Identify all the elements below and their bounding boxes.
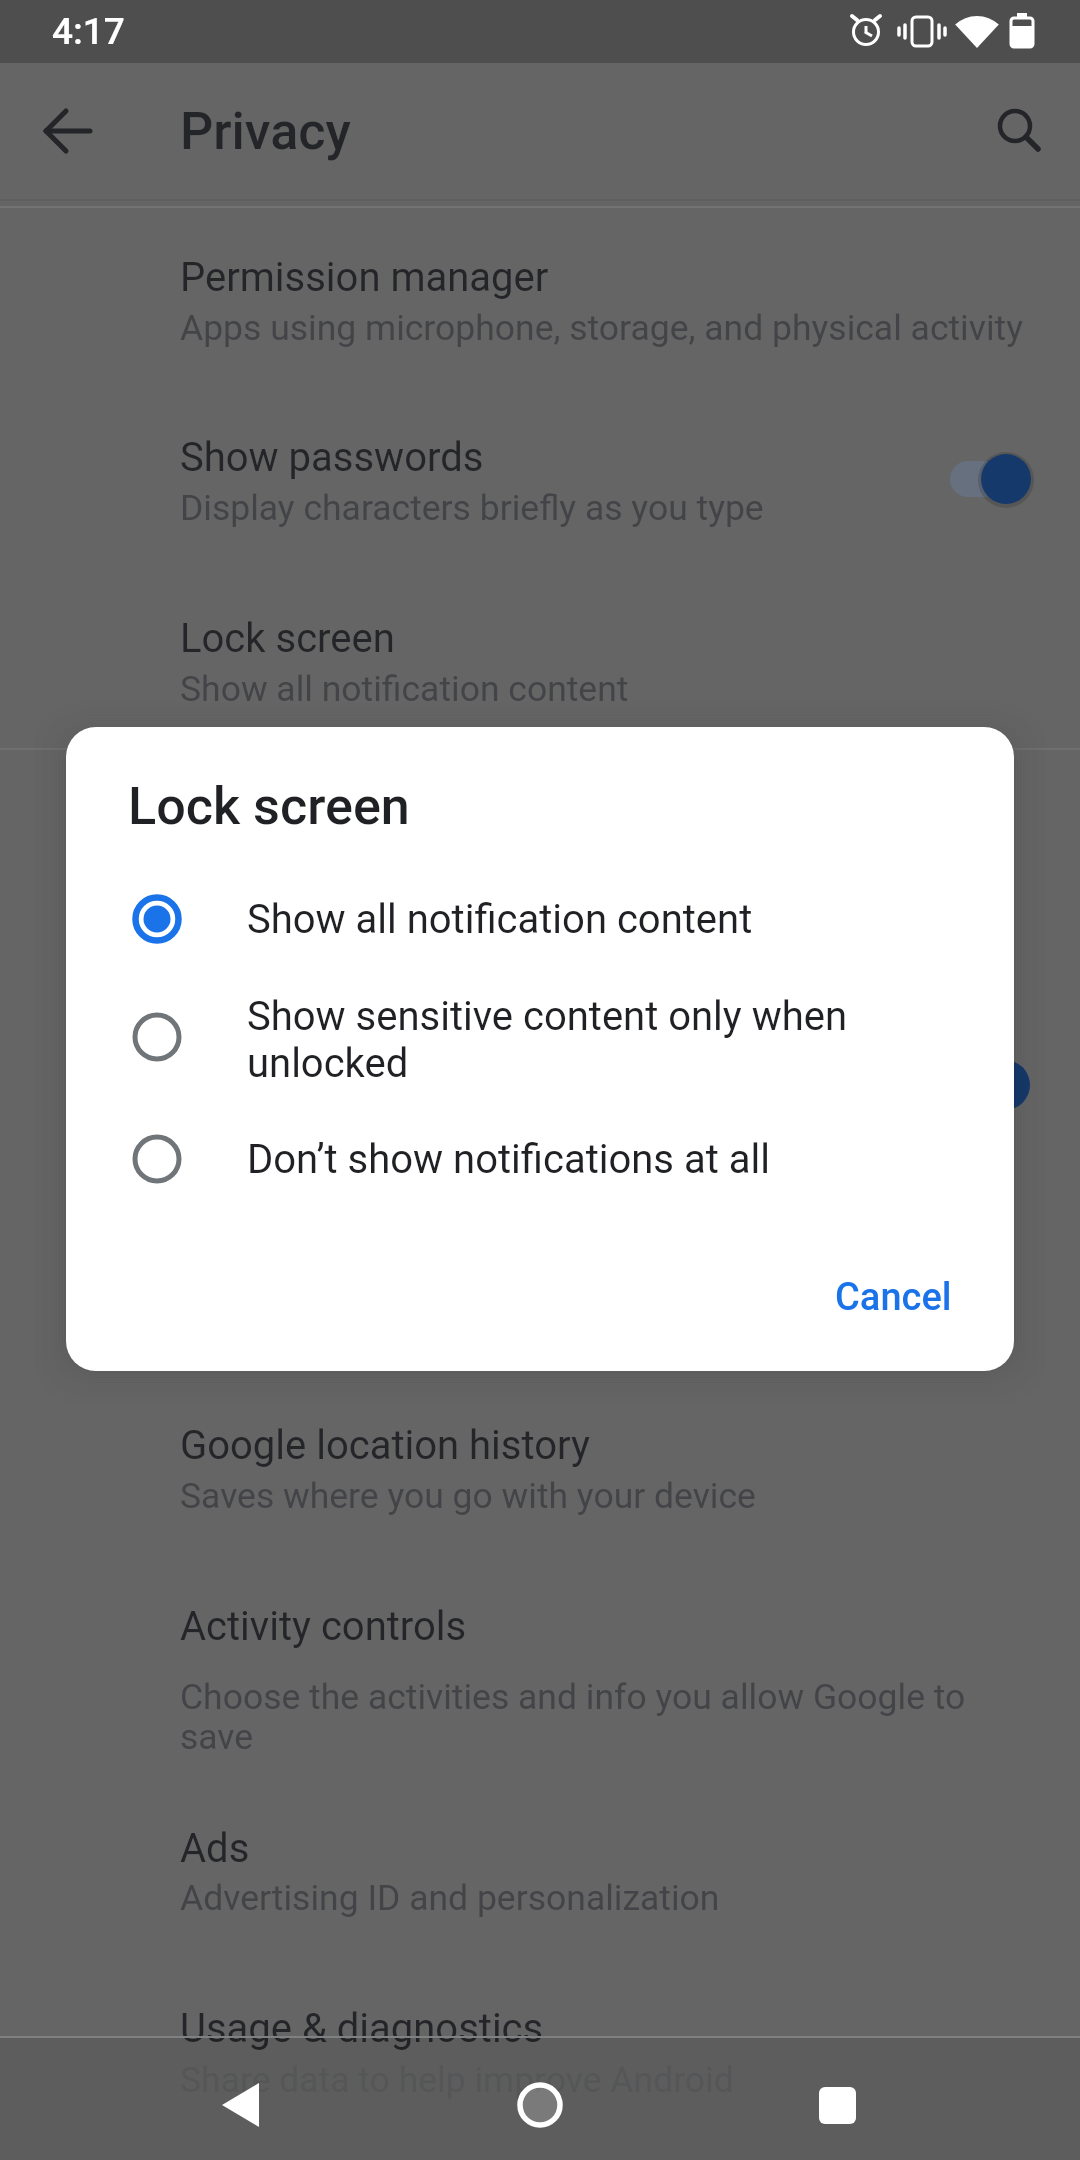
staticText: Choose the activities and info you allow…: [180, 1676, 1000, 1758]
staticText: Show all notification content: [247, 896, 753, 943]
button[interactable]: [0, 1973, 1080, 2083]
staticText: Google location history: [180, 1422, 590, 1469]
button[interactable]: [0, 1793, 1080, 1903]
button[interactable]: [0, 402, 1080, 512]
button[interactable]: [86, 1104, 994, 1214]
button[interactable]: [994, 106, 1042, 154]
staticText: Activity controls: [180, 1603, 467, 1650]
staticText: Apps using microphone, storage, and phys…: [180, 307, 1023, 349]
staticText: Usage & diagnostics: [180, 2005, 544, 2052]
button[interactable]: [44, 107, 92, 155]
button[interactable]: [222, 2083, 262, 2127]
staticText: Share data to help improve Android: [180, 2059, 734, 2101]
button[interactable]: [516, 2081, 564, 2129]
staticText: Privacy: [180, 101, 351, 162]
staticText: Cancel: [835, 1275, 952, 1320]
button[interactable]: [0, 222, 1080, 332]
staticText: Advertising ID and personalization: [180, 1877, 720, 1919]
staticText: Show passwords: [180, 434, 484, 481]
button[interactable]: [981, 454, 1031, 504]
button[interactable]: [0, 1571, 1080, 1681]
staticText: Saves where you go with your device: [180, 1475, 756, 1517]
staticText: Ads: [180, 1825, 250, 1872]
staticText: Permission manager: [180, 254, 549, 301]
staticText: 4:17: [52, 10, 125, 53]
button[interactable]: [816, 2081, 864, 2129]
staticText: Don’t show notifications at all: [247, 1136, 770, 1183]
button[interactable]: [0, 1390, 1080, 1500]
staticText: Lock screen: [128, 776, 410, 837]
staticText: Show all notification content: [180, 668, 629, 710]
button[interactable]: [0, 583, 1080, 693]
button[interactable]: Cancel: [827, 1267, 960, 1328]
staticText: Lock screen: [180, 615, 395, 662]
button[interactable]: [86, 864, 994, 974]
staticText: Show sensitive content only when unlocke…: [247, 993, 927, 1087]
button[interactable]: [86, 982, 994, 1092]
staticText: Display characters briefly as you type: [180, 487, 764, 529]
